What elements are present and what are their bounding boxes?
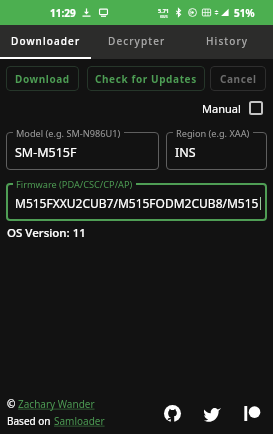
button[interactable]: Downloader (0, 25, 91, 56)
staticText: Model (e.g. SM-N986U1) (16, 127, 121, 140)
button[interactable]: Twitter (199, 400, 225, 426)
staticText: Manual (202, 101, 241, 115)
staticText: OS Version: 11 (7, 225, 86, 241)
staticText: M515FXXU2CUB7/M515FODM2CUB8/M515 (15, 195, 259, 211)
staticText: Download (15, 72, 70, 86)
staticText: Based on (7, 414, 54, 428)
staticText: KB/S (160, 14, 168, 19)
staticText: Check for Updates (95, 72, 197, 86)
button[interactable]: Manual (202, 101, 263, 115)
button[interactable]: Patreon (239, 400, 265, 426)
staticText: Region (e.g. XAA) (176, 127, 250, 140)
staticText: SM-M515F (15, 144, 77, 161)
button[interactable]: M515FXXU2CUB7/M515FODM2CUB8/M515 (6, 183, 267, 221)
staticText: INS (175, 144, 196, 161)
button[interactable]: Samloader (54, 414, 105, 428)
button[interactable]: Check for Updates (87, 66, 205, 91)
staticText: Downloader (11, 34, 81, 48)
staticText: Cancel (220, 72, 257, 86)
button[interactable]: Cancel (210, 66, 266, 91)
staticText: 51% (234, 6, 255, 20)
staticText: 5.71 (158, 7, 169, 14)
staticText: History (206, 34, 249, 48)
staticText: Decrypter (108, 34, 166, 48)
button[interactable]: Decrypter (91, 25, 182, 56)
staticText: © (7, 397, 18, 411)
button[interactable]: GitHub (159, 400, 185, 426)
button[interactable]: Zachary Wander (18, 397, 95, 411)
button[interactable]: INS (166, 132, 267, 170)
staticText: Firmware (PDA/CSC/CP/AP) (16, 178, 133, 191)
button[interactable]: History (182, 25, 273, 56)
button[interactable]: Download (6, 66, 79, 91)
staticText: 11:29 (50, 6, 76, 20)
button[interactable]: SM-M515F (6, 132, 159, 170)
